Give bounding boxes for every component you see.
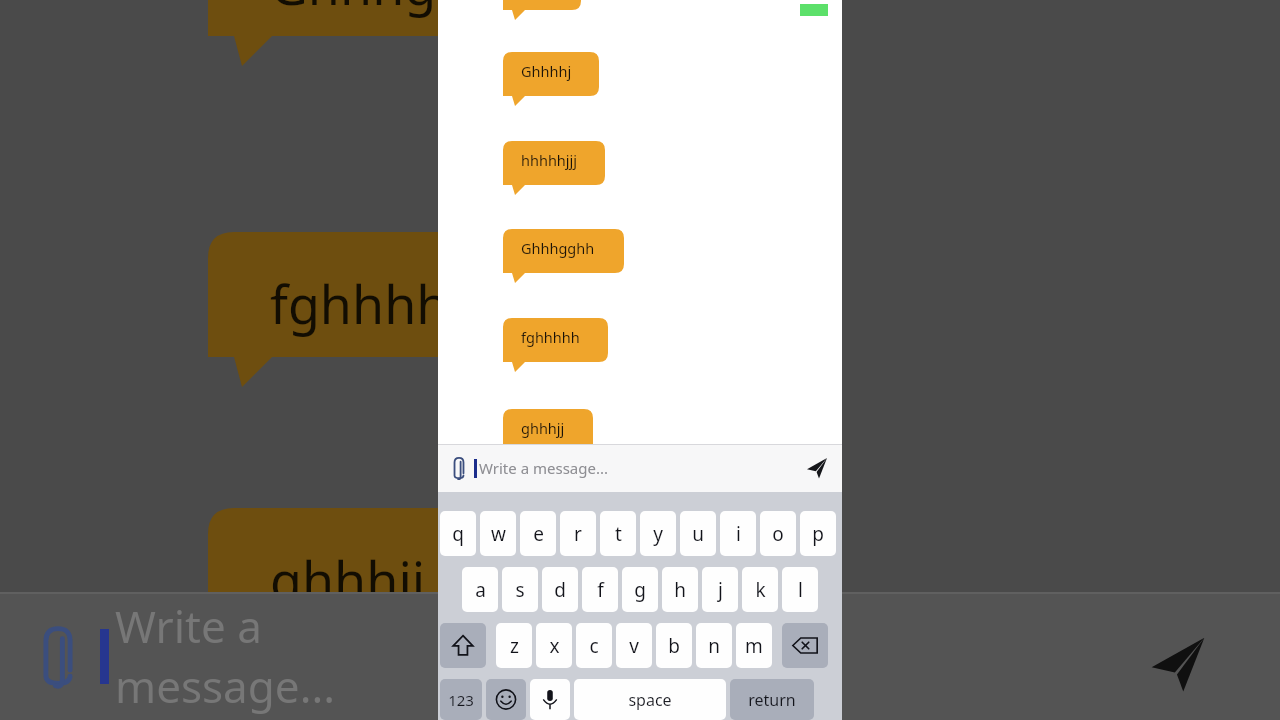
button[interactable]: Attach [446,444,834,492]
button[interactable]: s [502,567,538,612]
button[interactable]: w [480,511,516,556]
button[interactable]: c [576,623,612,668]
staticText: u [692,521,704,547]
staticText: fghhhh [270,268,449,339]
staticText: ghhhjj [521,418,565,438]
staticText: v [629,633,639,659]
staticText: hhhhhjjj [521,150,578,170]
staticText: c [589,633,599,659]
button[interactable]: e [520,511,556,556]
staticText: n [708,633,720,659]
button[interactable]: i [720,511,756,556]
staticText: t [615,521,622,547]
button[interactable]: 123 [440,679,482,720]
other: Attach [446,455,472,481]
staticText: g [634,577,646,603]
staticText: Write a message... [479,458,608,478]
button[interactable]: space [574,679,726,720]
staticText: f [597,577,604,603]
button[interactable]: q [440,511,476,556]
button[interactable]: Backspace [782,623,828,668]
staticText: d [554,577,566,603]
staticText: s [515,577,525,603]
staticText: m [745,633,763,659]
staticText: i [736,521,741,547]
button[interactable]: t [600,511,636,556]
button[interactable]: b [656,623,692,668]
staticText: k [755,577,766,603]
button[interactable]: u [680,511,716,556]
staticText: b [668,633,680,659]
button[interactable]: o [760,511,796,556]
staticText: e [533,521,544,547]
staticText: Ghhhgghh [521,238,595,258]
button[interactable]: n [696,623,732,668]
button[interactable]: d [542,567,578,612]
staticText: fghhhhh [521,327,580,347]
staticText: y [653,521,663,547]
button[interactable]: y [640,511,676,556]
staticText: return [748,689,796,711]
button[interactable]: x [536,623,572,668]
button[interactable]: m [736,623,772,668]
staticText: Ghhhg [270,0,437,20]
staticText: j [718,577,723,603]
button[interactable]: f [582,567,618,612]
button[interactable]: h [662,567,698,612]
button[interactable]: l [782,567,818,612]
staticText: Ghhhhj [521,61,572,81]
button[interactable]: return [730,679,814,720]
button[interactable]: j [702,567,738,612]
staticText: space [628,689,672,711]
staticText: z [510,633,519,659]
button[interactable]: p [800,511,836,556]
button[interactable]: a [462,567,498,612]
button[interactable]: g [622,567,658,612]
staticText: p [812,521,824,547]
staticText: l [798,577,803,603]
button[interactable]: r [560,511,596,556]
staticText: h [674,577,686,603]
staticText: ghhhjj [270,544,426,615]
button[interactable]: Voice input [530,679,570,720]
staticText: w [491,521,506,547]
staticText: a [475,577,486,603]
staticText: r [574,521,582,547]
staticText: Write a message... [115,596,438,716]
button[interactable]: z [496,623,532,668]
button[interactable]: v [616,623,652,668]
button[interactable]: k [742,567,778,612]
staticText: o [772,521,784,547]
staticText: q [452,521,464,547]
staticText: 123 [448,690,474,710]
staticText: x [549,633,560,659]
button[interactable]: Emoji [486,679,526,720]
button[interactable]: Shift [440,623,486,668]
button[interactable]: Send [800,451,834,485]
